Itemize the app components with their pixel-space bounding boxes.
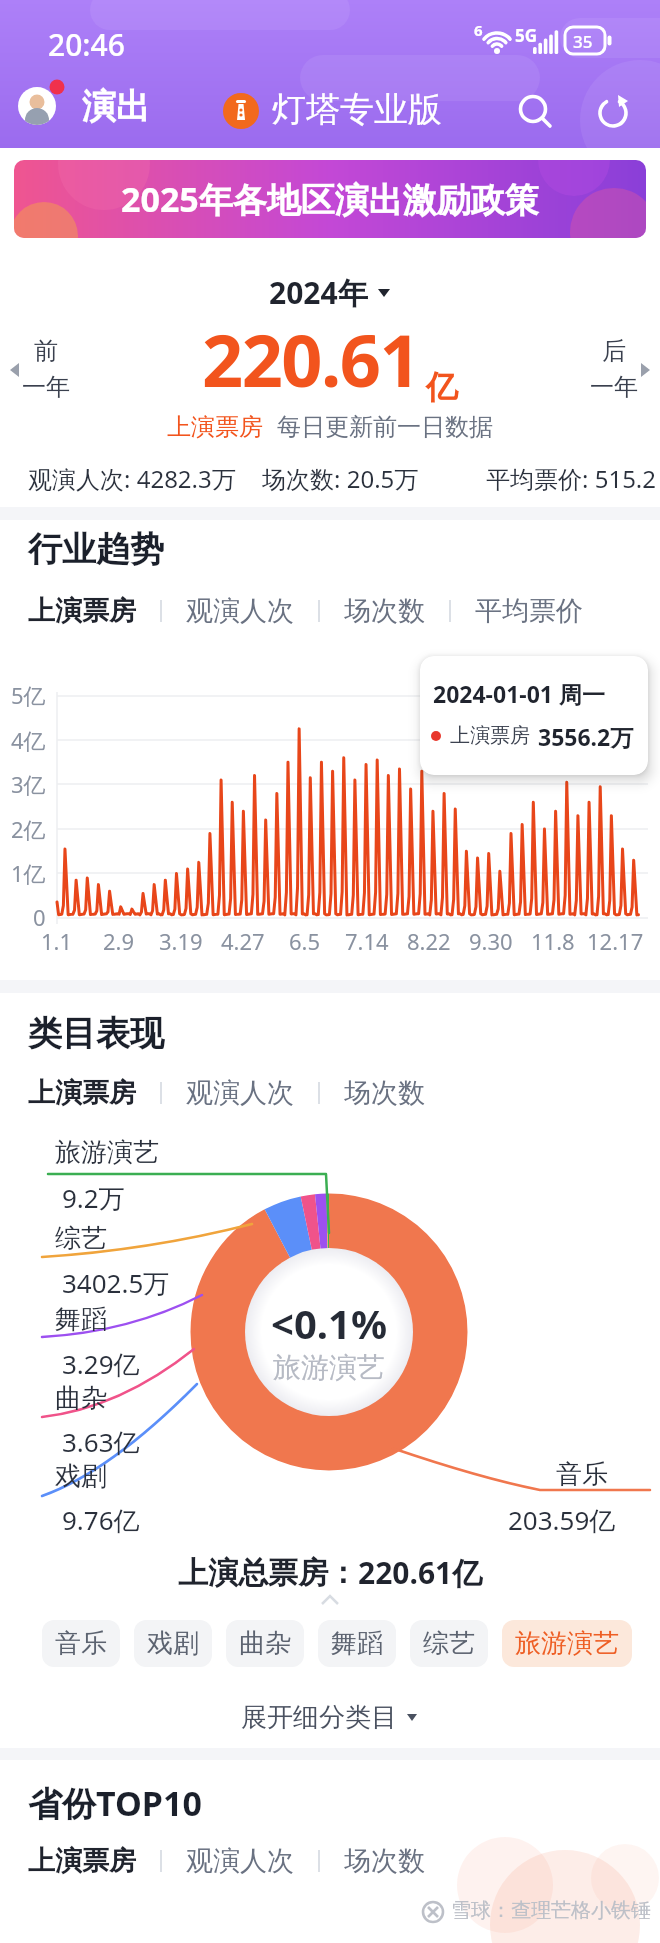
button[interactable]: 观演人次	[186, 594, 294, 628]
staticText: 演出	[82, 85, 150, 128]
button[interactable]: 上演票房	[28, 594, 136, 628]
staticText: 场次数	[344, 1076, 425, 1110]
staticText: 9.30	[469, 926, 513, 956]
button[interactable]: 前	[4, 330, 70, 420]
staticText: 12.17	[587, 926, 644, 956]
staticText: 场次数	[344, 594, 425, 628]
staticText: 4亿	[11, 725, 46, 755]
staticText: 上演票房	[450, 723, 530, 748]
staticText: 3556.2万	[538, 721, 634, 752]
staticText: 前	[34, 336, 58, 366]
staticText: 旅游演艺	[273, 1350, 385, 1385]
staticText: 观演人次	[186, 1844, 294, 1878]
staticText: 220.61	[202, 310, 420, 408]
staticText: 5G	[515, 24, 538, 47]
staticText: 场次数: 20.5万	[262, 462, 419, 495]
staticText: <0.1%	[271, 1296, 387, 1350]
staticText: 0	[33, 902, 46, 932]
button[interactable]: 展开细分类目	[241, 1701, 397, 1734]
button[interactable]	[517, 93, 555, 131]
button[interactable]	[595, 94, 633, 132]
staticText: 曲杂	[55, 1382, 107, 1415]
staticText: 场次数	[344, 1844, 425, 1878]
staticText: 戏剧	[147, 1627, 199, 1660]
staticText: 旅游演艺	[55, 1136, 159, 1169]
staticText: 4.27	[221, 926, 265, 956]
staticText: 上演票房	[28, 594, 136, 628]
staticText: 3亿	[11, 769, 46, 799]
staticText: 上演票房	[167, 412, 263, 442]
staticText: 音乐	[55, 1627, 107, 1660]
staticText: 9.2万	[62, 1180, 125, 1216]
staticText: 1亿	[11, 858, 46, 888]
staticText: 雪球：查理芒格小铁锤	[451, 1898, 651, 1923]
button[interactable]: 后	[590, 330, 656, 420]
staticText: 2亿	[11, 814, 46, 844]
staticText: 11.8	[531, 926, 575, 956]
staticText: 5亿	[11, 680, 46, 710]
staticText: 3.19	[159, 926, 203, 956]
staticText: 综艺	[55, 1222, 107, 1255]
staticText: 7.14	[345, 926, 389, 956]
staticText: 舞蹈	[55, 1303, 107, 1336]
staticText: 后	[602, 336, 626, 366]
staticText: 省份TOP10	[28, 1780, 202, 1826]
staticText: 3.29亿	[62, 1346, 140, 1382]
staticText: 3.63亿	[62, 1424, 140, 1460]
staticText: 9.76亿	[62, 1502, 140, 1538]
staticText: 1.1	[41, 926, 73, 956]
button[interactable]: 场次数	[344, 1076, 425, 1110]
staticText: 上演总票房：	[178, 1554, 358, 1592]
button[interactable]: 观演人次	[186, 1076, 294, 1110]
staticText: 旅游演艺	[515, 1627, 619, 1660]
button[interactable]: 场次数	[344, 594, 425, 628]
button[interactable]: 2025年各地区演出激励政策	[14, 160, 646, 238]
button[interactable]: 综艺	[410, 1620, 488, 1667]
staticText: 3402.5万	[62, 1265, 170, 1301]
staticText: 6.5	[289, 926, 321, 956]
staticText: 一年	[590, 372, 638, 402]
staticText: 平均票价	[475, 594, 583, 628]
staticText: 一年	[22, 372, 70, 402]
staticText: 2025年各地区演出激励政策	[121, 176, 539, 222]
button[interactable]: 上演票房	[28, 1076, 136, 1110]
staticText: 曲杂	[239, 1627, 291, 1660]
staticText: 6	[474, 20, 483, 40]
staticText: 上演票房	[28, 1076, 136, 1110]
staticText: 观演人次	[186, 1076, 294, 1110]
staticText: 203.59亿	[508, 1502, 616, 1538]
staticText: 每日更新前一日数据	[277, 412, 493, 442]
staticText: 戏剧	[55, 1460, 107, 1493]
staticText: 亿	[426, 367, 458, 407]
button[interactable]: 曲杂	[226, 1620, 304, 1667]
staticText: 行业趋势	[28, 528, 164, 571]
button[interactable]: 观演人次	[186, 1844, 294, 1878]
button[interactable]: 戏剧	[134, 1620, 212, 1667]
button[interactable]: 2024年	[269, 272, 368, 313]
staticText: 综艺	[423, 1627, 475, 1660]
staticText: 2.9	[103, 926, 135, 956]
staticText: 类目表现	[28, 1012, 164, 1055]
staticText: 灯塔专业版	[272, 88, 442, 131]
staticText: 2024-01-01 周一	[433, 678, 605, 709]
staticText: 展开细分类目	[241, 1701, 397, 1734]
staticText: 上演票房	[28, 1844, 136, 1878]
staticText: 220.61亿	[358, 1552, 483, 1593]
staticText: 舞蹈	[331, 1627, 383, 1660]
staticText: 20:46	[48, 24, 125, 65]
button[interactable]: 舞蹈	[318, 1620, 396, 1667]
staticText: 观演人次: 4282.3万	[28, 462, 236, 495]
staticText: 8.22	[407, 926, 451, 956]
staticText: 音乐	[556, 1458, 608, 1491]
button[interactable]: 平均票价	[475, 594, 583, 628]
button[interactable]: 上演票房	[28, 1844, 136, 1878]
button[interactable]: 场次数	[344, 1844, 425, 1878]
staticText: 平均票价: 515.2	[486, 462, 657, 495]
button[interactable]: 旅游演艺	[502, 1620, 632, 1667]
staticText: 2024年	[269, 272, 368, 313]
button[interactable]	[18, 87, 56, 125]
staticText: 观演人次	[186, 594, 294, 628]
staticText: 35	[573, 30, 593, 53]
button[interactable]: 音乐	[42, 1620, 120, 1667]
